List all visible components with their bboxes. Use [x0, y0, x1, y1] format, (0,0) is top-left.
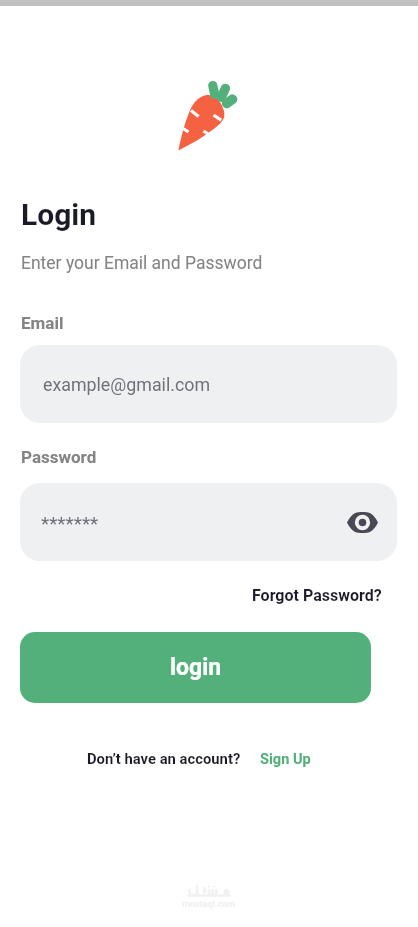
- button[interactable]: Show password: [343, 503, 381, 541]
- staticText: Enter your Email and Password: [21, 253, 263, 274]
- button[interactable]: Forgot Password?: [252, 586, 382, 605]
- staticText: mostaql.com: [182, 899, 236, 910]
- button[interactable]: *******: [20, 483, 397, 561]
- staticText: Don’t have an account?: [87, 750, 241, 767]
- staticText: Login: [21, 197, 97, 232]
- button[interactable]: Sign Up: [260, 750, 311, 767]
- staticText: login: [170, 654, 222, 681]
- staticText: Password: [21, 447, 97, 467]
- button[interactable]: login: [20, 632, 371, 703]
- staticText: *******: [41, 512, 99, 534]
- staticText: example@gmail.com: [43, 374, 210, 395]
- button[interactable]: example@gmail.com: [20, 345, 397, 423]
- staticText: Email: [21, 313, 64, 333]
